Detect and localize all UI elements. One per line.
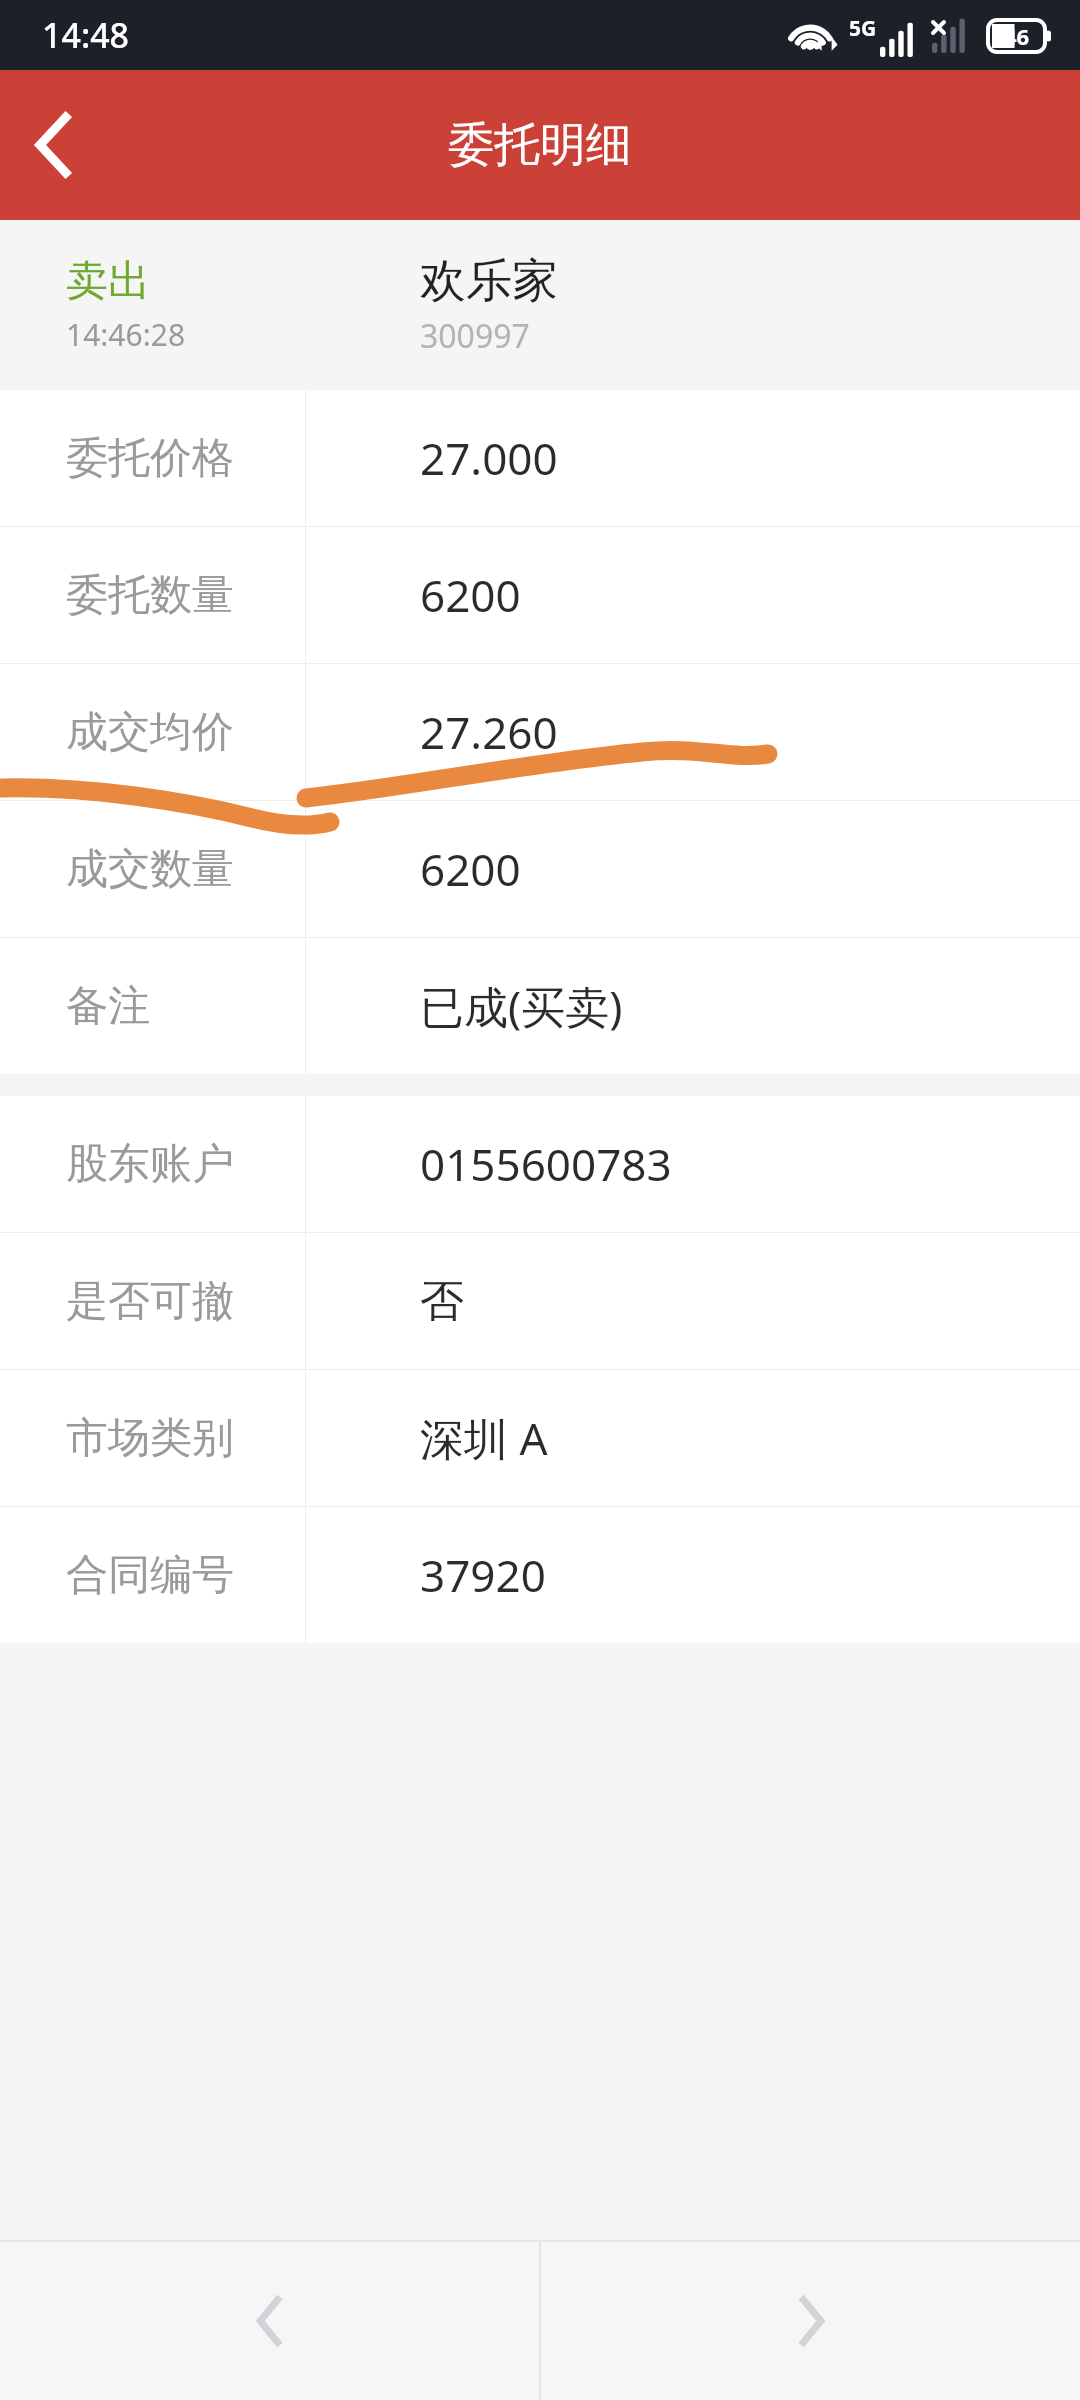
staticText: 卖出: [66, 255, 150, 308]
staticText: 否: [420, 1274, 464, 1329]
button[interactable]: 委托数量: [0, 527, 1080, 663]
staticText: 5G: [849, 14, 877, 43]
staticText: 成交均价: [66, 706, 234, 759]
staticText: 27.000: [420, 428, 558, 488]
staticText: 已成(买卖): [420, 976, 623, 1036]
button[interactable]: 合同编号: [0, 1507, 1080, 1643]
button[interactable]: 成交数量: [0, 801, 1080, 937]
staticText: 14:46:28: [66, 314, 186, 355]
staticText: 37920: [420, 1545, 546, 1605]
staticText: 委托数量: [66, 569, 234, 622]
staticText: 市场类别: [66, 1412, 234, 1465]
staticText: 300997: [420, 314, 530, 358]
button[interactable]: 市场类别: [0, 1370, 1080, 1506]
staticText: 27.260: [420, 702, 558, 762]
staticText: 14:48: [42, 12, 130, 58]
staticText: 是否可撤: [66, 1275, 234, 1328]
staticText: 股东账户: [66, 1138, 234, 1191]
staticText: 0155600783: [420, 1134, 672, 1194]
button[interactable]: Back: [0, 89, 112, 201]
staticText: 成交数量: [66, 843, 234, 896]
button[interactable]: 委托价格: [0, 390, 1080, 526]
staticText: 6200: [420, 565, 521, 625]
staticText: 深圳 A: [420, 1408, 548, 1468]
staticText: 合同编号: [66, 1549, 234, 1602]
button[interactable]: 成交均价: [0, 664, 1080, 800]
staticText: 备注: [66, 980, 150, 1033]
button[interactable]: 是否可撤: [0, 1233, 1080, 1369]
button[interactable]: 股东账户: [0, 1096, 1080, 1232]
staticText: 委托价格: [66, 432, 234, 485]
staticText: 46: [1004, 21, 1030, 51]
staticText: 委托明细: [448, 116, 632, 174]
staticText: 欢乐家: [420, 252, 558, 310]
button[interactable]: 备注: [0, 938, 1080, 1074]
staticText: 6200: [420, 839, 521, 899]
